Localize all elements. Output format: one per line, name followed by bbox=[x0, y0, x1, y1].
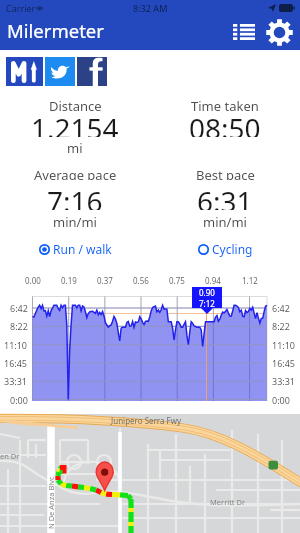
staticText: 33:31 bbox=[4, 375, 28, 387]
staticText: 1.2154 bbox=[31, 109, 119, 137]
staticText: 7:16 bbox=[47, 182, 103, 210]
staticText: 6:31 bbox=[197, 182, 253, 210]
staticText: 11:10 bbox=[4, 339, 28, 351]
staticText: Merritt Dr bbox=[210, 497, 246, 507]
staticText: 8:32 AM bbox=[133, 2, 168, 14]
staticText: 1.12 bbox=[242, 275, 258, 286]
staticText: Carrier bbox=[6, 2, 36, 14]
staticText: 0.56 bbox=[133, 275, 149, 286]
button[interactable]: Route map bbox=[0, 414, 300, 533]
staticText: 8:22 bbox=[10, 320, 28, 332]
button[interactable]: Run / walk bbox=[37, 239, 114, 259]
staticText: 6:42 bbox=[10, 302, 28, 314]
button[interactable]: Share on Facebook bbox=[77, 57, 107, 86]
button[interactable]: Cycling bbox=[196, 239, 255, 259]
staticText: Junipero Serra Fwy bbox=[111, 415, 182, 426]
staticText: 0.19 bbox=[61, 275, 77, 286]
staticText: 0:00 bbox=[272, 394, 290, 406]
staticText: 0.37 bbox=[97, 275, 113, 286]
staticText: 0:00 bbox=[10, 394, 28, 406]
button[interactable]: Share on Medium bbox=[6, 57, 43, 86]
staticText: Time taken bbox=[191, 97, 259, 111]
staticText: 11:10 bbox=[272, 339, 296, 351]
button[interactable]: Share on Twitter bbox=[45, 57, 75, 86]
staticText: 0.94 bbox=[205, 275, 221, 286]
staticText: Average pace bbox=[34, 166, 117, 180]
staticText: 6:42 bbox=[272, 302, 290, 314]
staticText: 33:31 bbox=[272, 375, 296, 387]
staticText: Distance bbox=[49, 97, 102, 111]
button[interactable]: Milermeter bbox=[0, 16, 300, 50]
button[interactable]: History list bbox=[230, 16, 258, 50]
staticText: 0.75 bbox=[169, 275, 185, 286]
staticText: 16:45 bbox=[272, 357, 296, 369]
button[interactable]: Settings bbox=[262, 16, 296, 50]
staticText: en Dr bbox=[0, 451, 20, 461]
staticText: 16:45 bbox=[4, 357, 28, 369]
staticText: 0.90 bbox=[199, 287, 215, 298]
staticText: 0.00 bbox=[25, 275, 41, 286]
staticText: mi bbox=[67, 139, 83, 153]
staticText: Run / walk bbox=[53, 241, 112, 257]
staticText: 7:12 bbox=[199, 298, 215, 308]
staticText: Cycling bbox=[212, 241, 253, 257]
staticText: 08:50 bbox=[189, 109, 261, 137]
staticText: 8:22 bbox=[272, 320, 290, 332]
staticText: N De Anza Blvd bbox=[46, 477, 56, 529]
staticText: min/mi bbox=[53, 213, 97, 227]
staticText: Best pace bbox=[196, 166, 255, 180]
staticText: min/mi bbox=[203, 213, 247, 227]
staticText: Milermeter bbox=[7, 18, 104, 43]
